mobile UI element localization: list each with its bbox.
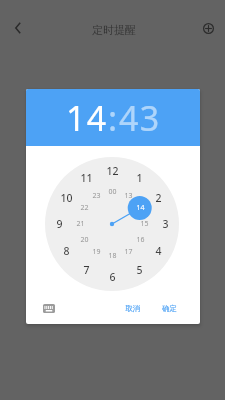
button[interactable]: Add reminder	[195, 15, 221, 41]
staticText: 7	[83, 263, 90, 277]
staticText: 6	[109, 270, 116, 284]
staticText: 确定	[162, 304, 177, 313]
staticText: 21	[76, 219, 85, 229]
staticText: 19	[92, 247, 101, 257]
staticText: 10	[60, 191, 73, 205]
staticText: 8	[63, 244, 70, 258]
staticText: 18	[108, 251, 117, 261]
staticText: 12	[106, 164, 119, 178]
staticText: 17	[124, 247, 133, 257]
staticText: 5	[136, 263, 143, 277]
staticText: 取消	[125, 304, 140, 313]
button[interactable]: 取消	[119, 299, 146, 318]
button[interactable]: 确定	[156, 299, 183, 318]
staticText: 16	[136, 235, 145, 245]
staticText: 3	[162, 217, 169, 231]
staticText: 20	[80, 235, 89, 245]
button[interactable]: Switch to keyboard input	[38, 297, 60, 319]
staticText: 14	[136, 203, 145, 213]
staticText: 4	[155, 244, 162, 258]
staticText: 13	[124, 191, 133, 201]
staticText: 9	[56, 217, 63, 231]
staticText: 2	[155, 191, 162, 205]
staticText: 22	[80, 203, 89, 213]
staticText: 1	[136, 171, 143, 185]
staticText: 11	[80, 171, 93, 185]
staticText: 15	[140, 219, 149, 229]
button[interactable]: 43	[119, 95, 161, 141]
staticText: 23	[92, 191, 101, 201]
button[interactable]: Back	[4, 14, 32, 42]
staticText: 定时提醒	[92, 23, 136, 37]
staticText: :	[108, 95, 119, 141]
button[interactable]: 14	[66, 95, 108, 141]
staticText: 00	[108, 187, 117, 197]
